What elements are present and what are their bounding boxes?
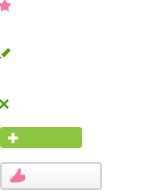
- button[interactable]: Edit: [0, 45, 13, 61]
- button[interactable]: [0, 127, 82, 148]
- button[interactable]: Favorite: [0, 0, 13, 14]
- button[interactable]: [0, 162, 102, 190]
- button[interactable]: Close: [0, 96, 12, 112]
